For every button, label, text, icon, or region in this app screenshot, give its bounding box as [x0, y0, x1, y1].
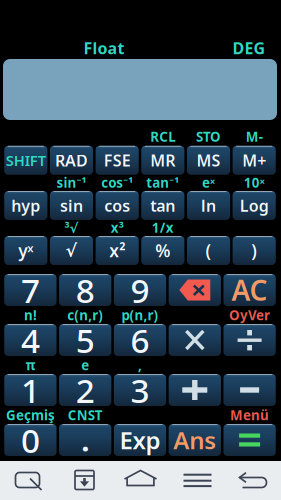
button[interactable]: %	[141, 236, 184, 265]
button[interactable]: Ans	[169, 424, 221, 456]
button[interactable]: .	[59, 424, 111, 456]
button[interactable]: 2	[59, 374, 111, 406]
staticText: )	[251, 239, 257, 262]
button[interactable]: 1	[4, 374, 56, 406]
button[interactable]: 7	[4, 274, 56, 306]
button[interactable]: 0	[4, 424, 56, 456]
button[interactable]: yˣ	[4, 236, 47, 265]
staticText: CNST	[68, 406, 103, 424]
button[interactable]: hyp	[4, 191, 47, 220]
staticText: tan	[150, 195, 175, 216]
staticText: tan⁻¹	[146, 174, 179, 191]
staticText: p(n,r)	[121, 306, 158, 324]
staticText: .	[81, 420, 89, 459]
staticText: OyVer	[229, 306, 270, 324]
button[interactable]: SHIFT	[4, 146, 47, 175]
button[interactable]: (	[187, 236, 230, 265]
staticText: 10ˣ	[244, 174, 265, 191]
staticText: Geçmiş	[6, 406, 55, 424]
button[interactable]: √	[50, 236, 93, 265]
button[interactable]: Plus	[169, 374, 221, 406]
staticText: 0	[21, 418, 40, 462]
staticText: 5	[76, 318, 95, 362]
button[interactable]: Divide	[223, 324, 276, 356]
button[interactable]: 4	[4, 324, 56, 356]
staticText: Exp	[119, 424, 160, 456]
button[interactable]: Search	[0, 461, 56, 500]
staticText: (	[205, 239, 211, 262]
staticText: %	[155, 239, 170, 262]
staticText: AC	[232, 271, 268, 309]
staticText: sin	[60, 195, 83, 216]
staticText: 1	[21, 368, 40, 412]
button[interactable]: 6	[114, 324, 166, 356]
button[interactable]: RAD	[50, 146, 93, 175]
button[interactable]: Minus	[223, 374, 276, 406]
staticText: sin⁻¹	[56, 174, 86, 191]
staticText: Menü	[230, 406, 269, 424]
staticText: e	[81, 356, 89, 374]
button[interactable]: Menu	[169, 461, 225, 500]
staticText: MR	[150, 150, 175, 171]
staticText: MS	[196, 150, 220, 171]
staticText: 8	[76, 268, 95, 312]
staticText: n!	[24, 306, 37, 324]
staticText: c(n,r)	[67, 306, 103, 324]
button[interactable]: Back	[225, 461, 281, 500]
button[interactable]: Equals	[223, 424, 276, 456]
staticText: cos	[104, 195, 130, 216]
staticText: ln	[201, 195, 216, 216]
button[interactable]: Delete	[169, 274, 221, 306]
staticText: √	[65, 241, 77, 260]
button[interactable]: Log	[233, 191, 276, 220]
staticText: STO	[196, 128, 221, 145]
staticText: eˣ	[202, 174, 215, 191]
staticText: 7	[21, 268, 40, 312]
staticText: hyp	[11, 195, 40, 216]
staticText: 9	[130, 268, 149, 312]
staticText: x³	[111, 219, 124, 236]
staticText: Float	[83, 37, 124, 59]
button[interactable]: 3	[114, 374, 166, 406]
staticText: M-	[246, 128, 263, 145]
button[interactable]: 9	[114, 274, 166, 306]
staticText: RCL	[150, 128, 175, 145]
staticText: ,	[138, 356, 142, 374]
button[interactable]: x²	[96, 236, 139, 265]
button[interactable]: Downloads	[56, 461, 112, 500]
button[interactable]: ln	[187, 191, 230, 220]
staticText: 3	[130, 368, 149, 412]
staticText: 4	[21, 318, 40, 362]
button[interactable]: MR	[141, 146, 184, 175]
button[interactable]: )	[233, 236, 276, 265]
staticText: DEG	[232, 37, 265, 59]
button[interactable]: cos	[96, 191, 139, 220]
button[interactable]: AC	[223, 274, 276, 306]
button[interactable]: Multiply	[169, 324, 221, 356]
staticText: 2	[76, 368, 95, 412]
button[interactable]: 5	[59, 324, 111, 356]
button[interactable]: Home	[112, 461, 168, 500]
staticText: 6	[130, 318, 149, 362]
staticText: RAD	[55, 150, 88, 171]
button[interactable]: FSE	[96, 146, 139, 175]
staticText: Log	[240, 195, 269, 216]
staticText: yˣ	[18, 239, 33, 262]
button[interactable]: 8	[59, 274, 111, 306]
staticText: SHIFT	[6, 151, 46, 170]
staticText: cos⁻¹	[101, 174, 133, 191]
button[interactable]: Exp	[114, 424, 166, 456]
button[interactable]: M+	[233, 146, 276, 175]
staticText: Ans	[173, 424, 216, 456]
button[interactable]: tan	[141, 191, 184, 220]
staticText: FSE	[104, 150, 131, 171]
staticText: ³√	[64, 219, 78, 236]
button[interactable]: MS	[187, 146, 230, 175]
button[interactable]: sin	[50, 191, 93, 220]
staticText: 1/x	[152, 219, 174, 236]
staticText: x²	[109, 239, 125, 262]
staticText: M+	[242, 150, 266, 171]
staticText: π	[25, 356, 35, 374]
